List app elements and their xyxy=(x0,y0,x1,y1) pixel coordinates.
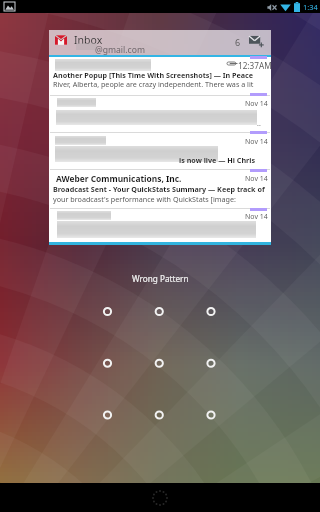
staticText: is now live — Hi Chris xyxy=(179,155,256,165)
staticText: Another Popup [This Time With Screenshot… xyxy=(53,70,254,80)
staticText: Nov 14 xyxy=(245,212,268,222)
staticText: Nov 14 xyxy=(245,99,268,109)
staticText: 12:37AM xyxy=(238,60,272,71)
staticText: @gmail.com xyxy=(95,44,145,56)
button[interactable]: Unlock xyxy=(147,485,173,511)
staticText: Nov 14 xyxy=(245,137,268,147)
button[interactable]: Compose new mail xyxy=(249,34,263,47)
staticText: 6 xyxy=(235,36,241,48)
staticText: River, Alberta, people are crazy indepen… xyxy=(53,79,254,89)
staticText: your broadcast's performance with QuickS… xyxy=(53,194,236,204)
staticText: Inbox xyxy=(74,33,103,47)
staticText: Nov 14 xyxy=(245,174,268,184)
button[interactable] xyxy=(49,30,271,55)
staticText: Wrong Pattern xyxy=(132,273,189,284)
staticText: 1:34 xyxy=(303,2,318,12)
other: Screenshot captured xyxy=(4,2,15,11)
staticText: Broadcast Sent - Your QuickStats Summary… xyxy=(53,184,265,194)
staticText: .. xyxy=(257,119,261,129)
staticText: AWeber Communications, Inc. xyxy=(56,173,182,184)
